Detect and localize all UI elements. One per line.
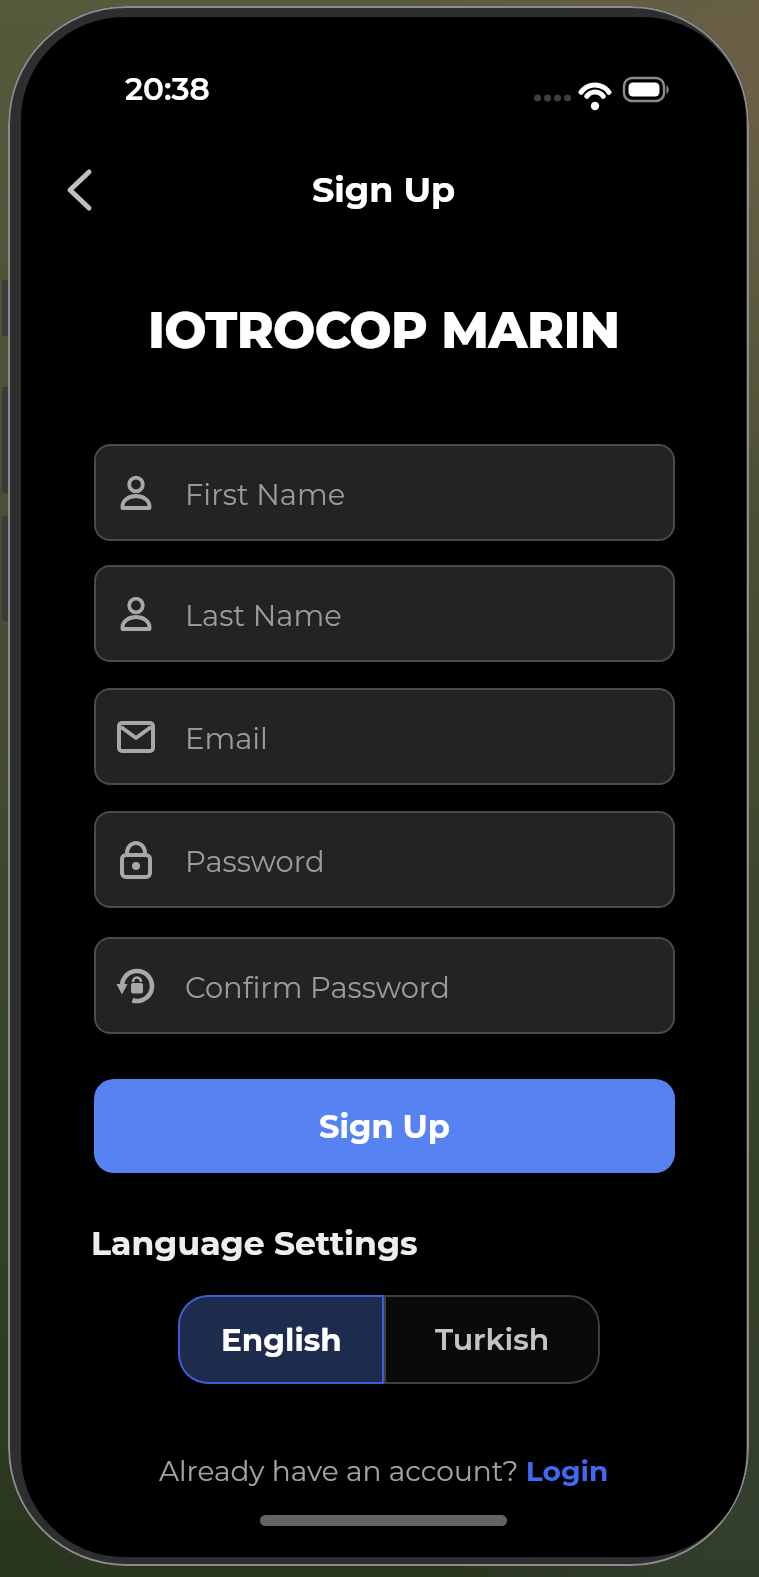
button[interactable] bbox=[47, 157, 113, 223]
staticText: English bbox=[221, 1321, 342, 1359]
button[interactable]: English bbox=[178, 1295, 384, 1384]
staticText: Email bbox=[185, 721, 268, 756]
staticText: Language Settings bbox=[91, 1223, 418, 1263]
staticText: IOTROCOP MARIN bbox=[148, 300, 620, 361]
staticText: Confirm Password bbox=[185, 970, 450, 1005]
button[interactable]: First Name bbox=[94, 444, 675, 541]
button[interactable]: Last Name bbox=[94, 565, 675, 662]
staticText: 20:38 bbox=[125, 70, 210, 108]
staticText: Sign Up bbox=[319, 1107, 450, 1146]
button[interactable]: Password bbox=[94, 811, 675, 908]
staticText: Password bbox=[185, 844, 325, 879]
staticText: Last Name bbox=[185, 598, 342, 633]
button[interactable]: Confirm Password bbox=[94, 937, 675, 1034]
button[interactable]: Turkish bbox=[384, 1295, 600, 1384]
staticText: Turkish bbox=[435, 1321, 550, 1358]
staticText: Sign Up bbox=[312, 168, 456, 211]
button[interactable]: Email bbox=[94, 688, 675, 785]
button[interactable]: Already have an account? Login bbox=[21, 1449, 746, 1493]
staticText: First Name bbox=[185, 477, 346, 512]
staticText: Already have an account? Login bbox=[159, 1454, 609, 1488]
button[interactable]: Sign Up bbox=[94, 1079, 675, 1173]
